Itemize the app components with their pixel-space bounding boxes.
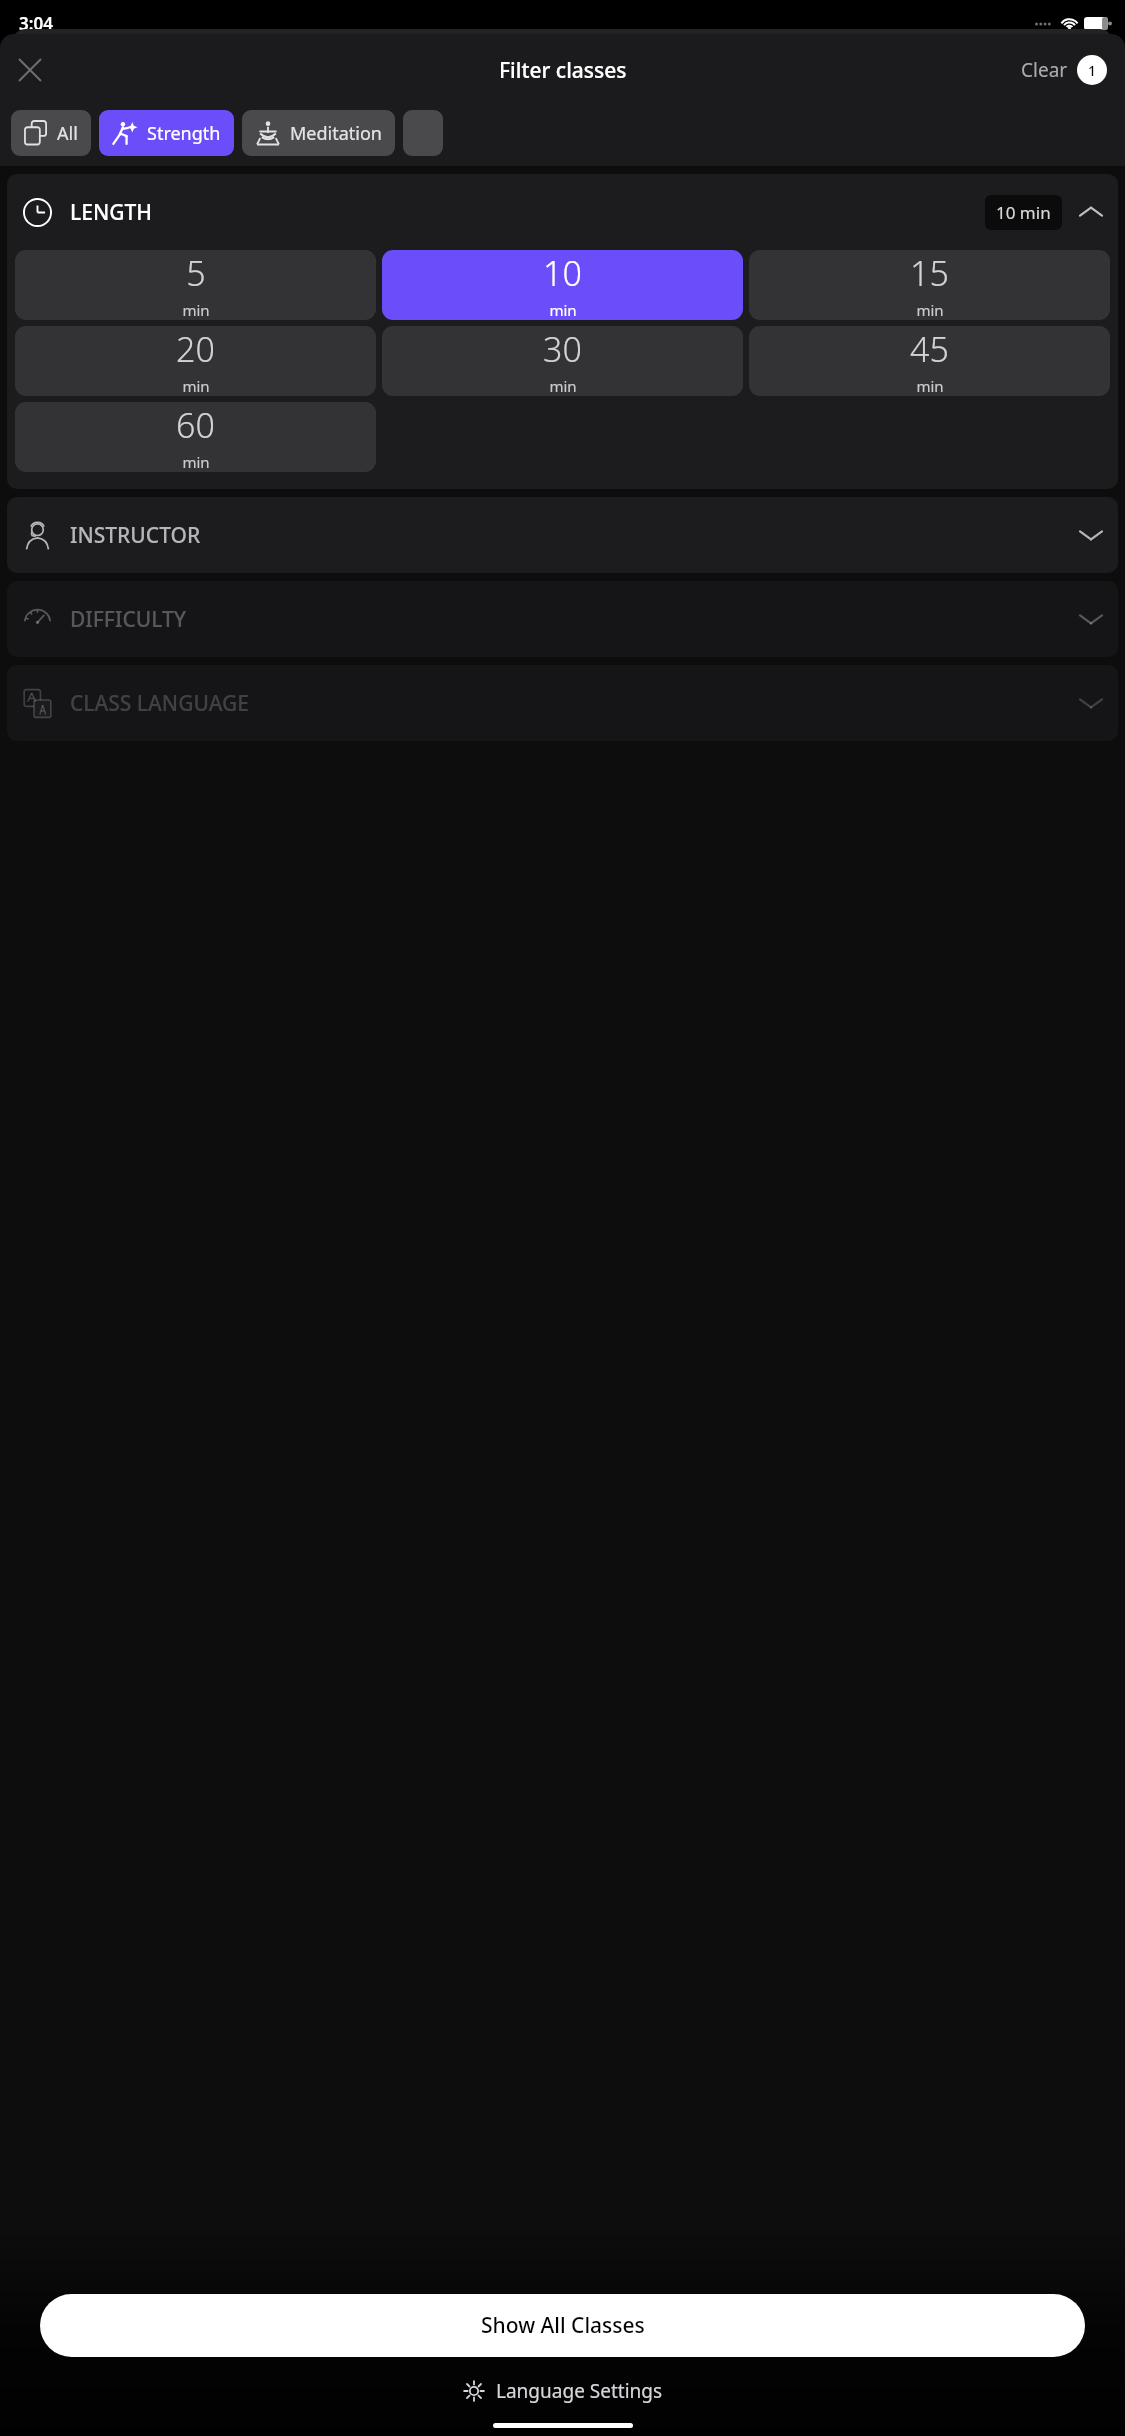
staticText: 45 [910,326,949,372]
staticText: All [57,121,78,146]
button[interactable]: 20 [15,326,376,396]
button[interactable]: 45 [749,326,1110,396]
staticText: CLASS LANGUAGE [70,689,249,718]
staticText: 60 [176,402,215,448]
staticText: 20 [176,326,215,372]
button[interactable]: 10 [382,250,743,320]
button[interactable]: Show All Classes [40,2294,1085,2357]
staticText: Language Settings [496,2378,663,2404]
staticText: min [916,300,944,320]
button[interactable]: LENGTH [7,174,1118,250]
button[interactable]: 5 [15,250,376,320]
staticText: Filter classes [499,56,627,85]
staticText: min [182,300,210,320]
staticText: Strength [147,121,221,146]
staticText: Clear [1021,57,1068,83]
other: Collapse [1080,201,1102,223]
button[interactable]: Clear [1017,47,1111,93]
button[interactable]: Close [6,46,54,94]
staticText: min [182,376,210,396]
staticText: 10 min [996,201,1051,224]
button[interactable]: CLASS LANGUAGE [7,665,1118,741]
staticText: 15 [910,250,949,296]
staticText: min [182,452,210,472]
staticText: Meditation [290,121,382,146]
button[interactable]: INSTRUCTOR [7,497,1118,573]
button[interactable]: DIFFICULTY [7,581,1118,657]
button[interactable]: Meditation [242,110,395,156]
button[interactable]: All [11,110,91,156]
staticText: min [549,300,577,320]
staticText: 5 [186,250,206,296]
staticText: DIFFICULTY [70,605,187,634]
button[interactable]: 15 [749,250,1110,320]
button[interactable]: Language Settings [453,2372,673,2410]
staticText: LENGTH [70,198,152,227]
staticText: 1 [1088,61,1097,80]
button[interactable]: Strength [99,110,234,156]
staticText: min [549,376,577,396]
button[interactable]: 30 [382,326,743,396]
button[interactable]: 60 [15,402,376,472]
staticText: INSTRUCTOR [70,521,201,550]
staticText: Show All Classes [481,2311,645,2340]
staticText: 3:04 [19,12,53,35]
staticText: 10 [543,250,582,296]
staticText: min [916,376,944,396]
staticText: 30 [543,326,582,372]
